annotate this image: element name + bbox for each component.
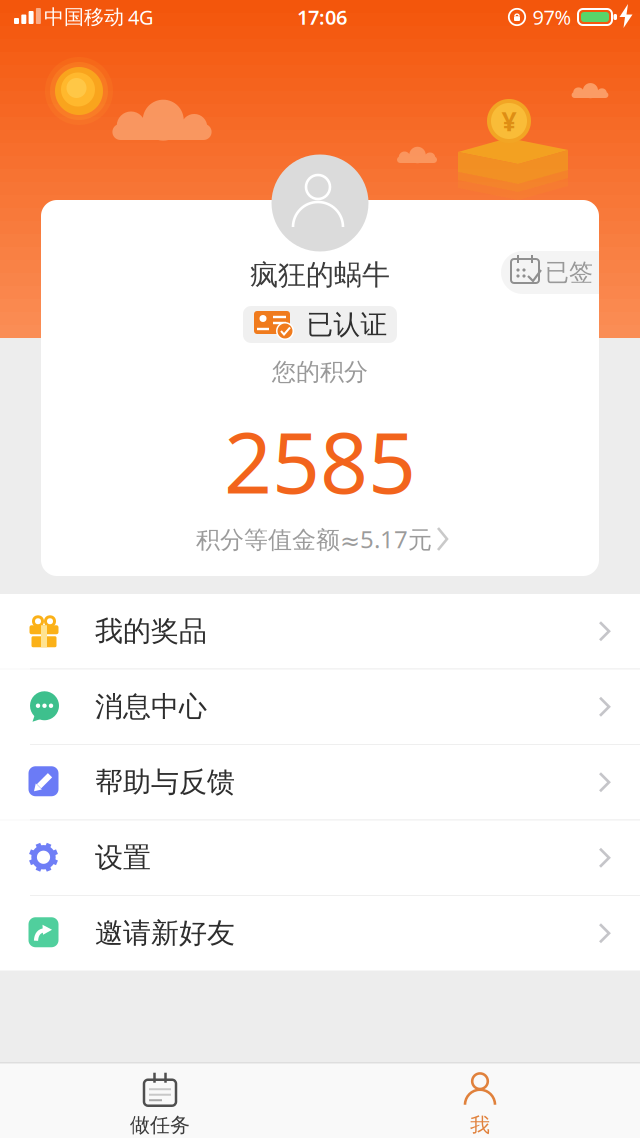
staticText: 4G <box>128 4 154 30</box>
staticText: 已认证 <box>306 308 387 341</box>
staticText: 消息中心 <box>95 690 207 724</box>
button[interactable]: 积分等值金额≈5.17元 <box>196 523 450 555</box>
button[interactable]: 帮助与反馈 <box>0 745 640 819</box>
button[interactable]: 已签 <box>501 251 600 294</box>
button[interactable]: 我的奖品 <box>0 594 640 668</box>
button[interactable]: 邀请新好友 <box>0 896 640 970</box>
button[interactable]: 消息中心 <box>0 669 640 744</box>
button[interactable]: 做任务 <box>0 1063 320 1138</box>
staticText: 2585 <box>224 405 416 517</box>
staticText: 积分等值金额≈5.17元 <box>196 523 432 555</box>
button[interactable]: 设置 <box>0 820 640 895</box>
staticText: 我 <box>470 1113 490 1137</box>
staticText: 我的奖品 <box>95 614 207 648</box>
staticText: 设置 <box>95 841 151 875</box>
staticText: 做任务 <box>130 1113 190 1137</box>
staticText: 已签 <box>545 258 593 287</box>
button[interactable]: 我 <box>320 1063 640 1138</box>
staticText: 17:06 <box>297 4 347 30</box>
staticText: 您的积分 <box>272 357 368 387</box>
staticText: 97% <box>532 4 571 30</box>
staticText: 疯狂的蜗牛 <box>250 258 390 292</box>
staticText: ¥ <box>501 103 516 139</box>
staticText: 中国移动 <box>44 5 124 29</box>
staticText: 帮助与反馈 <box>95 765 235 799</box>
staticText: 邀请新好友 <box>95 916 235 950</box>
